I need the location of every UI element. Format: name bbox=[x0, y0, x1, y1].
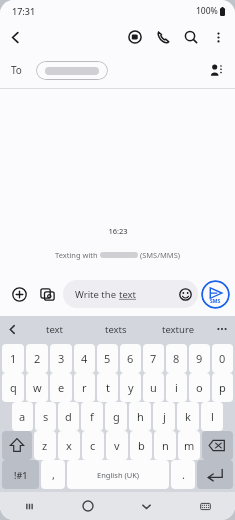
button[interactable]: n bbox=[154, 431, 176, 460]
button[interactable]: Call bbox=[149, 23, 177, 51]
staticText: , bbox=[52, 467, 55, 482]
button[interactable]: texts bbox=[85, 316, 147, 342]
button[interactable]: Add attachment bbox=[6, 281, 32, 307]
staticText: (SMS/MMS) bbox=[138, 250, 180, 260]
staticText: 8 bbox=[173, 351, 180, 366]
button[interactable]: g bbox=[105, 402, 127, 431]
button[interactable]: m bbox=[178, 431, 200, 460]
button[interactable]: o bbox=[189, 373, 210, 402]
staticText: i bbox=[175, 380, 178, 395]
staticText: z bbox=[42, 438, 48, 453]
button[interactable]: More suggestions bbox=[209, 316, 235, 342]
button[interactable]: 4 bbox=[74, 344, 95, 373]
button[interactable]: Search bbox=[177, 23, 205, 51]
button[interactable]: l bbox=[201, 402, 223, 431]
staticText: x bbox=[66, 438, 72, 453]
button[interactable]: Video call bbox=[121, 23, 149, 51]
button[interactable]: 2 bbox=[26, 344, 48, 373]
button[interactable]: Shift bbox=[2, 431, 32, 460]
staticText: text bbox=[119, 288, 137, 301]
button[interactable]: Gallery bbox=[34, 281, 60, 307]
staticText: texts bbox=[105, 323, 127, 336]
button[interactable]: 0 bbox=[212, 344, 233, 373]
staticText: To bbox=[11, 63, 22, 77]
button[interactable]: Write the bbox=[63, 280, 198, 308]
staticText: u bbox=[150, 380, 157, 395]
button[interactable]: h bbox=[129, 402, 151, 431]
button[interactable]: s bbox=[35, 402, 56, 431]
button[interactable]: c bbox=[82, 431, 104, 460]
button[interactable]: r bbox=[74, 373, 95, 402]
button[interactable]: Enter bbox=[197, 460, 233, 489]
staticText: s bbox=[43, 409, 49, 424]
button[interactable]: 7 bbox=[143, 344, 164, 373]
staticText: 6 bbox=[127, 351, 134, 366]
button[interactable]: English (UK) bbox=[67, 460, 169, 489]
staticText: English (UK) bbox=[97, 470, 140, 480]
button[interactable]: v bbox=[106, 431, 128, 460]
button[interactable]: q bbox=[2, 373, 24, 402]
button[interactable]: u bbox=[143, 373, 164, 402]
staticText: t bbox=[106, 380, 110, 395]
staticText: d bbox=[65, 409, 72, 424]
button[interactable]: Previous suggestions bbox=[0, 317, 24, 341]
staticText: y bbox=[128, 380, 134, 395]
button[interactable]: a bbox=[12, 402, 33, 431]
button[interactable]: Emoji bbox=[174, 283, 196, 305]
button[interactable]: Send SMS bbox=[201, 280, 230, 309]
staticText: 1 bbox=[10, 351, 17, 366]
button[interactable] bbox=[36, 61, 108, 80]
button[interactable]: t bbox=[97, 373, 118, 402]
staticText: 3 bbox=[58, 351, 65, 366]
staticText: 16:23 bbox=[108, 226, 128, 236]
button[interactable]: d bbox=[58, 402, 79, 431]
staticText: h bbox=[137, 409, 144, 424]
button[interactable]: text bbox=[24, 316, 85, 342]
button[interactable]: z bbox=[34, 431, 56, 460]
button[interactable]: Switch keyboard bbox=[176, 492, 235, 520]
staticText: 2 bbox=[34, 351, 41, 366]
button[interactable]: Backspace bbox=[202, 431, 233, 460]
button[interactable]: 8 bbox=[166, 344, 187, 373]
staticText: l bbox=[211, 409, 214, 424]
button[interactable]: Add recipients bbox=[201, 55, 231, 85]
button[interactable]: Home bbox=[58, 492, 117, 520]
staticText: e bbox=[58, 380, 65, 395]
button[interactable]: More options bbox=[205, 24, 231, 50]
button[interactable]: Back bbox=[0, 22, 30, 52]
button[interactable]: i bbox=[166, 373, 187, 402]
button[interactable]: Recents bbox=[0, 492, 58, 520]
button[interactable]: Hide keyboard bbox=[117, 492, 176, 520]
staticText: 9 bbox=[196, 351, 203, 366]
staticText: SMS bbox=[210, 298, 221, 305]
staticText: r bbox=[82, 380, 87, 395]
button[interactable]: j bbox=[153, 402, 175, 431]
button[interactable]: p bbox=[212, 373, 233, 402]
button[interactable]: 3 bbox=[50, 344, 72, 373]
staticText: n bbox=[162, 438, 169, 453]
staticText: q bbox=[10, 380, 17, 395]
staticText: text bbox=[46, 323, 64, 336]
staticText: j bbox=[163, 409, 166, 424]
button[interactable]: 6 bbox=[120, 344, 141, 373]
button[interactable]: e bbox=[50, 373, 72, 402]
staticText: 17:31 bbox=[12, 5, 36, 17]
button[interactable]: k bbox=[177, 402, 199, 431]
button[interactable]: texture bbox=[147, 316, 209, 342]
button[interactable]: 9 bbox=[189, 344, 210, 373]
button[interactable]: w bbox=[26, 373, 48, 402]
button[interactable]: x bbox=[58, 431, 80, 460]
button[interactable]: b bbox=[130, 431, 152, 460]
staticText: 100% bbox=[196, 5, 218, 17]
staticText: 7 bbox=[150, 351, 157, 366]
button[interactable]: y bbox=[120, 373, 141, 402]
button[interactable]: 1 bbox=[2, 344, 24, 373]
staticText: !#1 bbox=[14, 469, 28, 481]
button[interactable]: 5 bbox=[97, 344, 118, 373]
staticText: f bbox=[90, 409, 94, 424]
button[interactable]: , bbox=[41, 460, 65, 489]
button[interactable]: f bbox=[81, 402, 103, 431]
button[interactable]: !#1 bbox=[2, 460, 39, 489]
staticText: b bbox=[138, 438, 145, 453]
button[interactable]: . bbox=[171, 460, 195, 489]
